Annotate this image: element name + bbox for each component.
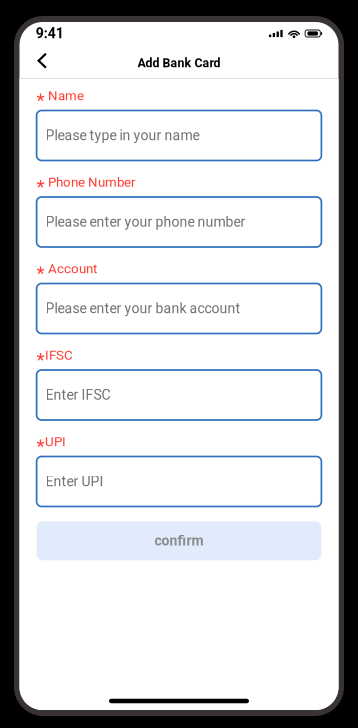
- staticText: Add Bank Card: [137, 56, 220, 70]
- staticText: *: [37, 262, 45, 284]
- staticText: *: [37, 435, 45, 457]
- button[interactable]: confirm: [37, 521, 321, 560]
- staticText: Please enter your bank account: [46, 300, 241, 317]
- staticText: Account: [48, 261, 97, 277]
- staticText: *: [37, 176, 45, 198]
- button[interactable]: Back: [19, 51, 75, 75]
- staticText: Phone Number: [48, 174, 136, 190]
- staticText: confirm: [154, 533, 203, 549]
- staticText: UPI: [45, 434, 66, 450]
- staticText: Please type in your name: [46, 127, 200, 144]
- staticText: *: [37, 89, 45, 111]
- staticText: Please enter your phone number: [46, 214, 246, 230]
- staticText: *: [37, 349, 45, 371]
- staticText: Enter IFSC: [46, 387, 111, 403]
- staticText: Enter UPI: [46, 473, 104, 490]
- staticText: Name: [48, 88, 84, 104]
- staticText: IFSC: [45, 347, 73, 363]
- staticText: 9:41: [36, 25, 64, 42]
